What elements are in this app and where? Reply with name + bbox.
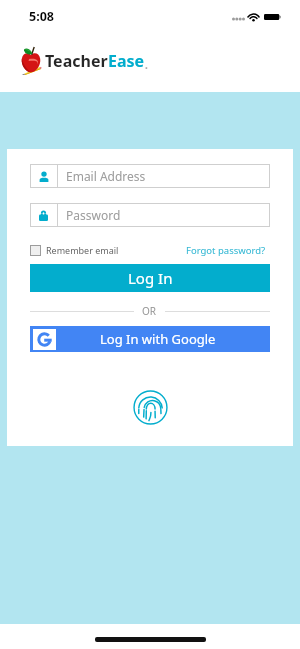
button[interactable]: Remember email xyxy=(30,244,119,256)
staticText: Password xyxy=(66,207,121,223)
staticText: Log In with Google xyxy=(100,330,216,348)
staticText: . xyxy=(145,58,148,72)
staticText: Ease xyxy=(108,50,145,72)
staticText: Log In xyxy=(128,268,173,288)
button[interactable]: Log In xyxy=(30,264,270,292)
staticText: Email Address xyxy=(66,168,146,184)
button[interactable]: Forgot password? xyxy=(186,244,270,257)
button[interactable]: Password xyxy=(30,203,270,227)
button[interactable]: Fingerprint login xyxy=(133,390,168,425)
staticText: Teacher xyxy=(45,50,108,72)
button[interactable]: Log In with Google xyxy=(30,326,270,352)
staticText: OR xyxy=(142,304,157,318)
button[interactable]: Email Address xyxy=(30,164,270,188)
staticText: Remember email xyxy=(46,244,119,256)
staticText: 5:08 xyxy=(29,8,54,25)
